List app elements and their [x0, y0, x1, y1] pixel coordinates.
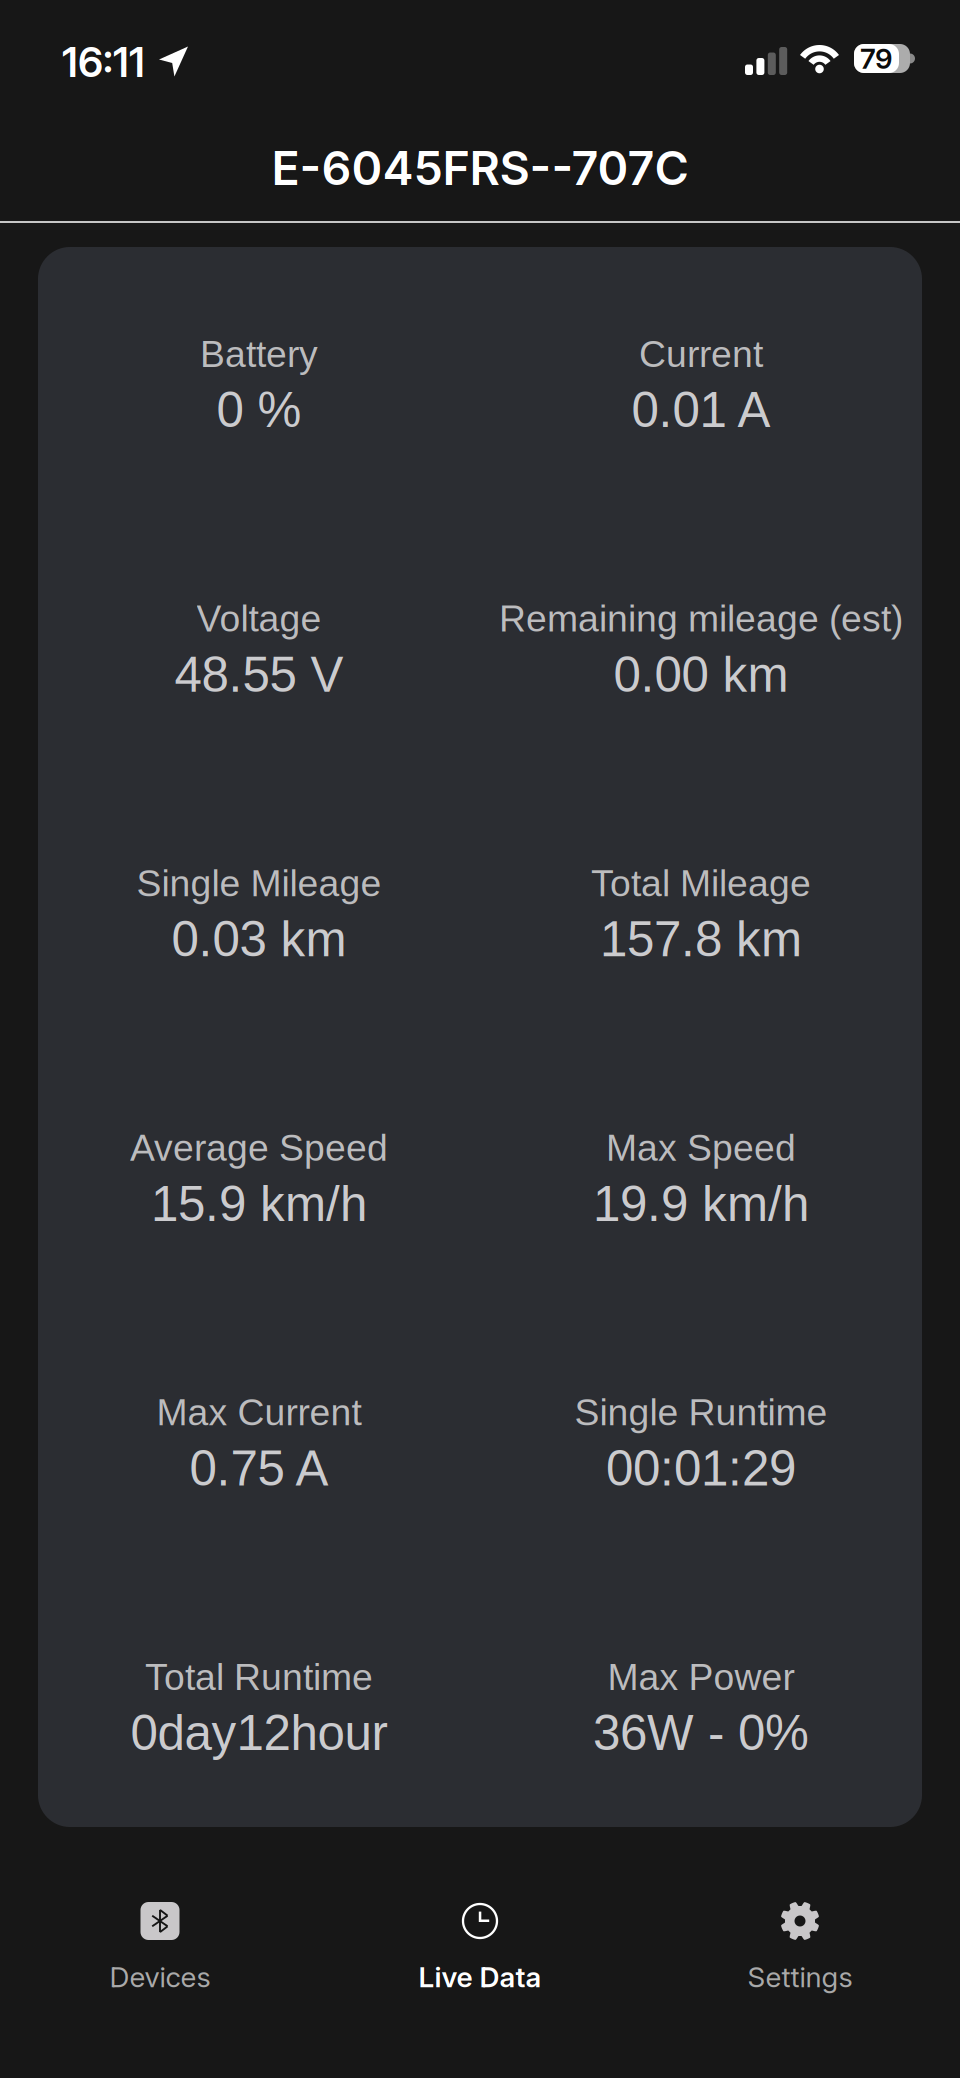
- staticText: 15.9 km/h: [151, 1176, 367, 1231]
- staticText: Single Runtime: [574, 1391, 827, 1433]
- staticText: Settings: [747, 1960, 852, 1994]
- staticText: Remaining mileage (est): [499, 598, 903, 639]
- staticText: 36W - 0%: [593, 1705, 809, 1760]
- staticText: Battery: [200, 333, 318, 375]
- staticText: 0.75 A: [189, 1441, 328, 1496]
- staticText: Average Speed: [130, 1127, 388, 1169]
- staticText: Max Power: [607, 1656, 794, 1698]
- staticText: Max Current: [156, 1391, 361, 1433]
- staticText: 0 %: [216, 382, 301, 437]
- staticText: 0.00 km: [613, 647, 788, 702]
- staticText: 79: [860, 42, 893, 75]
- button[interactable]: Live Data tab: [360, 1882, 600, 2022]
- staticText: 16:11: [62, 37, 145, 87]
- staticText: E-6045FRS--707C: [271, 140, 688, 196]
- button[interactable]: Settings tab: [680, 1882, 920, 2022]
- staticText: 157.8 km: [600, 912, 802, 967]
- staticText: 0.03 km: [171, 912, 346, 967]
- staticText: Voltage: [196, 598, 321, 639]
- staticText: Total Mileage: [591, 862, 811, 904]
- staticText: 0.01 A: [631, 382, 770, 437]
- staticText: 48.55 V: [174, 647, 343, 702]
- staticText: Max Speed: [606, 1127, 796, 1169]
- staticText: 19.9 km/h: [593, 1176, 809, 1231]
- staticText: Single Mileage: [136, 862, 381, 904]
- staticText: Current: [639, 333, 763, 375]
- staticText: 0day12hour: [130, 1705, 387, 1760]
- staticText: Total Runtime: [145, 1656, 373, 1698]
- staticText: Live Data: [418, 1960, 541, 1994]
- staticText: 00:01:29: [606, 1441, 796, 1496]
- button[interactable]: Devices tab: [40, 1882, 280, 2022]
- staticText: Devices: [109, 1960, 210, 1994]
